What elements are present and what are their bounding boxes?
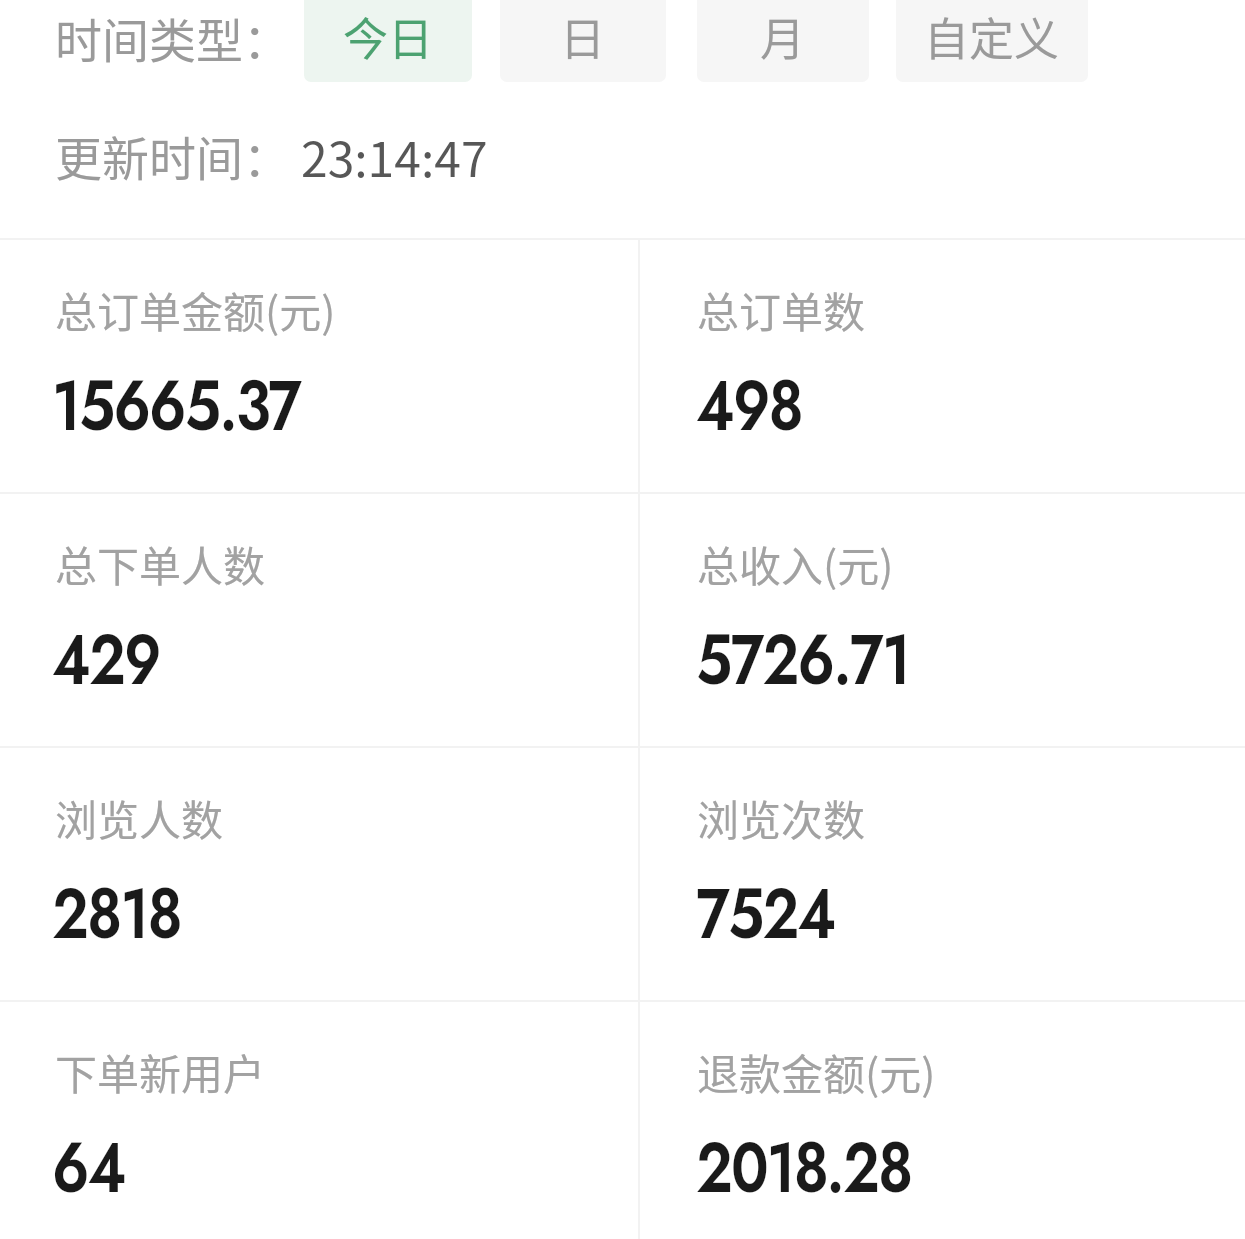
staticText: 498 xyxy=(696,356,802,456)
staticText: 浏览人数 xyxy=(55,787,224,848)
staticText: 15665.37 xyxy=(52,356,301,456)
staticText: 自定义 xyxy=(924,4,1060,69)
button[interactable]: 日 xyxy=(500,0,666,82)
staticText: 总收入(元) xyxy=(697,533,894,594)
staticText: 日 xyxy=(560,4,606,69)
button[interactable]: 总订单金额(元) xyxy=(0,240,638,492)
button[interactable]: 退款金额(元) xyxy=(640,1002,1245,1239)
button[interactable]: 总订单数 xyxy=(640,240,1245,492)
staticText: 浏览次数 xyxy=(697,787,866,848)
button[interactable]: 浏览次数 xyxy=(640,748,1245,1000)
staticText: 429 xyxy=(52,610,160,710)
button[interactable]: 自定义 xyxy=(896,0,1088,82)
staticText: 时间类型： xyxy=(55,3,290,71)
staticText: 总下单人数 xyxy=(55,533,266,594)
staticText: 今日 xyxy=(343,4,434,69)
staticText: 5726.71 xyxy=(696,610,909,710)
button[interactable]: 浏览人数 xyxy=(0,748,638,1000)
staticText: 23:14:47 xyxy=(301,121,488,191)
staticText: 月 xyxy=(760,4,806,69)
button[interactable]: 总下单人数 xyxy=(0,494,638,746)
staticText: 总订单数 xyxy=(697,279,866,340)
staticText: 更新时间： xyxy=(55,121,290,189)
staticText: 退款金额(元) xyxy=(697,1041,936,1102)
staticText: 2018.28 xyxy=(696,1118,912,1218)
staticText: 总订单金额(元) xyxy=(55,279,336,340)
button[interactable]: 下单新用户 xyxy=(0,1002,638,1239)
staticText: 7524 xyxy=(696,864,835,964)
staticText: 下单新用户 xyxy=(55,1041,266,1102)
staticText: 2818 xyxy=(52,864,181,964)
button[interactable]: 月 xyxy=(697,0,869,82)
button[interactable]: 今日 xyxy=(304,0,472,82)
button[interactable]: 总收入(元) xyxy=(640,494,1245,746)
staticText: 64 xyxy=(52,1118,125,1218)
